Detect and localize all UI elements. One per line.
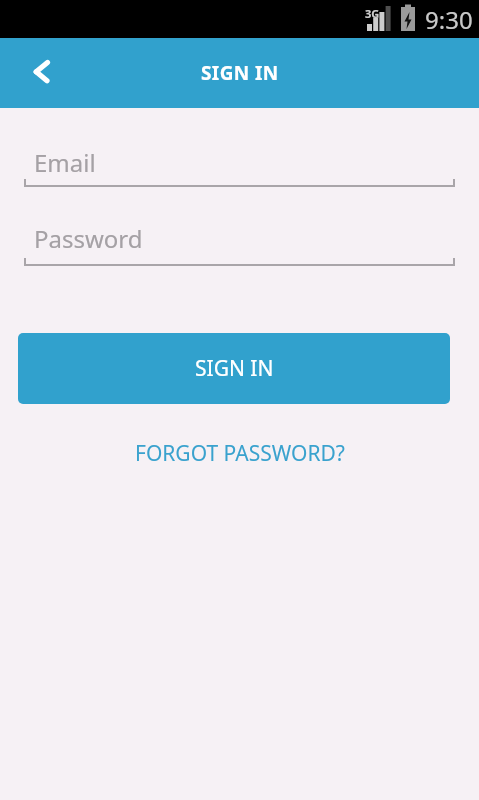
button[interactable] (0, 38, 70, 108)
staticText: Password (34, 222, 143, 255)
button[interactable]: SIGN IN (18, 333, 450, 404)
staticText: 3G (365, 6, 380, 21)
staticText: SIGN IN (201, 60, 279, 86)
button[interactable] (24, 214, 455, 266)
button[interactable]: FORGOT PASSWORD? (127, 435, 353, 472)
staticText: 9:30 (425, 3, 473, 36)
staticText: FORGOT PASSWORD? (135, 439, 345, 468)
staticText: SIGN IN (195, 354, 274, 383)
button[interactable] (24, 136, 455, 188)
staticText: Email (34, 146, 96, 179)
